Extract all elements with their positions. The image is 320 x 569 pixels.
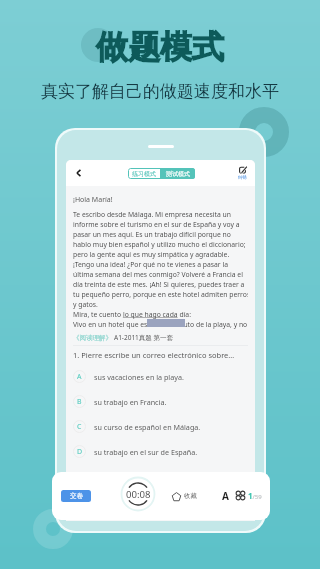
staticText: 1/59 <box>248 490 262 501</box>
staticText: 00:08 <box>126 488 151 501</box>
staticText: su trabajo en Francia. <box>94 397 167 407</box>
button[interactable]: 测试模式 <box>160 168 195 179</box>
button[interactable]: 收藏 <box>172 489 197 503</box>
button[interactable]: A <box>73 364 248 389</box>
staticText: Te escribo desde Málaga. Mi empresa nece… <box>73 210 248 329</box>
other: Report error <box>239 166 247 174</box>
staticText: A1-2011真题 第一套 <box>114 333 174 342</box>
staticText: 交卷 <box>70 492 83 500</box>
button[interactable]: 练习模式 <box>128 168 160 179</box>
staticText: sus vacaciones en la playa. <box>94 372 184 382</box>
staticText: 1. Pierre escribe un correo electrónico … <box>73 350 235 360</box>
staticText: su trabajo en el sur de España. <box>94 447 198 457</box>
staticText: 真实了解自己的做题速度和水平 <box>41 81 279 102</box>
button[interactable]: 1/59 <box>236 488 262 503</box>
button[interactable]: B <box>73 389 248 414</box>
staticText: A <box>77 372 82 382</box>
staticText: ¡Hola María! <box>73 195 113 205</box>
staticText: 测试模式 <box>166 170 190 178</box>
staticText: D <box>77 447 83 457</box>
button[interactable]: Font size <box>219 488 231 503</box>
staticText: 练习模式 <box>132 170 156 178</box>
button[interactable]: C <box>73 414 248 439</box>
staticText: C <box>77 422 82 432</box>
staticText: 做题模式 <box>96 27 224 67</box>
button[interactable]: Timer <box>121 477 155 511</box>
staticText: 纠错 <box>238 175 247 181</box>
button[interactable]: Report error <box>238 166 247 181</box>
staticText: su curso de español en Málaga. <box>94 422 201 432</box>
button[interactable]: 交卷 <box>61 490 91 502</box>
button[interactable]: D <box>73 439 248 464</box>
staticText: 收藏 <box>184 492 197 500</box>
staticText: A <box>222 489 229 503</box>
button[interactable]: Back <box>73 167 85 179</box>
staticText: 《阅读理解》 <box>73 334 112 342</box>
staticText: B <box>77 397 82 407</box>
